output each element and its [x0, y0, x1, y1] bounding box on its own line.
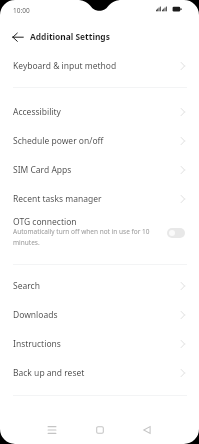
- button[interactable]: Accessibility: [0, 97, 199, 126]
- staticText: Automatically turn off when not in use f…: [13, 227, 153, 247]
- button[interactable]: Keyboard & input method: [0, 51, 199, 80]
- staticText: Additional Settings: [30, 31, 110, 42]
- button[interactable]: Back up and reset: [0, 358, 199, 387]
- button[interactable]: SIM Card Apps: [0, 155, 199, 184]
- staticText: SIM Card Apps: [13, 164, 72, 176]
- button[interactable]: Downloads: [0, 300, 199, 329]
- button[interactable]: Search: [0, 271, 199, 300]
- staticText: Keyboard & input method: [13, 60, 117, 72]
- button[interactable]: Back: [4, 23, 32, 51]
- staticText: Schedule power on/off: [13, 135, 104, 147]
- button[interactable]: OTG connection: [0, 208, 199, 249]
- staticText: Recent tasks manager: [13, 193, 102, 205]
- button[interactable]: OTG connection toggle: [167, 228, 185, 238]
- staticText: Search: [13, 280, 40, 292]
- button[interactable]: Recent tasks manager: [0, 184, 199, 213]
- button[interactable]: Recent apps: [37, 415, 67, 444]
- button[interactable]: Back: [132, 415, 162, 444]
- button[interactable]: Home: [85, 415, 115, 444]
- staticText: Downloads: [13, 309, 58, 321]
- staticText: Back up and reset: [13, 367, 85, 379]
- button[interactable]: Schedule power on/off: [0, 126, 199, 155]
- button[interactable]: Instructions: [0, 329, 199, 358]
- staticText: 10:00: [13, 6, 30, 15]
- staticText: OTG connection: [13, 216, 77, 228]
- staticText: Accessibility: [13, 106, 61, 118]
- staticText: Instructions: [13, 338, 61, 350]
